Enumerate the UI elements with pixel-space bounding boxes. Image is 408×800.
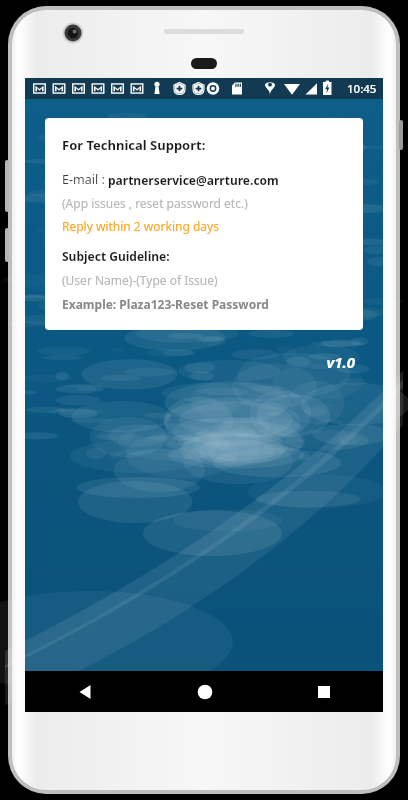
staticText: For Technical Support: (62, 136, 206, 154)
staticText: E-mail : (62, 171, 108, 188)
staticText: v1.0 (25, 352, 355, 372)
button[interactable]: Back (25, 671, 145, 712)
staticText: Subject Guideline: (62, 248, 170, 264)
button[interactable]: Recent apps (264, 671, 383, 712)
button[interactable]: Home (145, 671, 264, 712)
button[interactable]: For Technical Support: (45, 118, 363, 330)
button[interactable]: partnerservice@arrture.com (108, 172, 279, 188)
staticText: (App issues , reset password etc.) (62, 195, 248, 211)
staticText: Reply within 2 working days (62, 218, 219, 234)
staticText: 10:45 (347, 81, 377, 97)
staticText: Example: Plaza123-Reset Password (62, 296, 269, 312)
staticText: (User Name)-(Type of Issue) (62, 272, 218, 288)
